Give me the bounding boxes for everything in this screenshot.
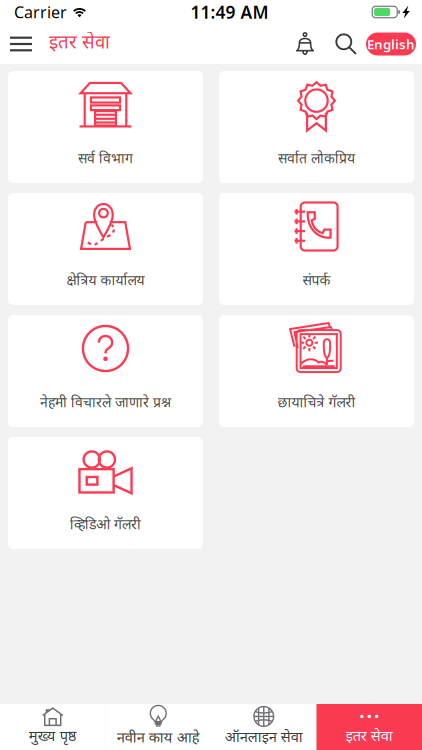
staticText: संपर्क (302, 273, 330, 291)
staticText: Carrier (14, 1, 67, 23)
staticText: 11:49 AM (190, 0, 268, 23)
staticText: ऑनलाइन सेवा (225, 729, 303, 748)
button[interactable]: व्हिडिओ गॅलरी (8, 437, 203, 549)
button[interactable]: क्षेत्रिय कार्यालय (8, 193, 203, 305)
button[interactable]: इतर सेवा (316, 704, 422, 750)
button[interactable]: नवीन काय आहे (105, 704, 211, 750)
staticText: नेहमी विचारले जाणारे प्रश्न (40, 395, 171, 413)
button[interactable]: सर्व विभाग (8, 71, 203, 183)
button[interactable]: ऑनलाइन सेवा (211, 704, 316, 750)
button[interactable]: छायाचित्रे गॅलरी (219, 315, 414, 427)
button[interactable]: English (366, 32, 416, 55)
staticText: व्हिडिओ गॅलरी (70, 517, 141, 535)
staticText: English (367, 35, 415, 53)
staticText: इतर सेवा (346, 728, 393, 747)
button[interactable]: Search (328, 24, 364, 64)
staticText: क्षेत्रिय कार्यालय (66, 273, 144, 291)
button[interactable]: सर्वात लोकप्रिय (219, 71, 414, 183)
staticText: मुख्य पृष्ठ (29, 728, 77, 747)
button[interactable]: संपर्क (219, 193, 414, 305)
staticText: इतर सेवा (49, 32, 110, 56)
button[interactable]: Menu (10, 24, 32, 64)
staticText: सर्वात लोकप्रिय (278, 151, 355, 169)
button[interactable]: नेहमी विचारले जाणारे प्रश्न (8, 315, 203, 427)
staticText: नवीन काय आहे (117, 729, 200, 748)
staticText: छायाचित्रे गॅलरी (277, 395, 355, 413)
button[interactable]: Notifications (282, 24, 328, 64)
staticText: सर्व विभाग (78, 151, 133, 169)
button[interactable]: मुख्य पृष्ठ (0, 704, 105, 750)
